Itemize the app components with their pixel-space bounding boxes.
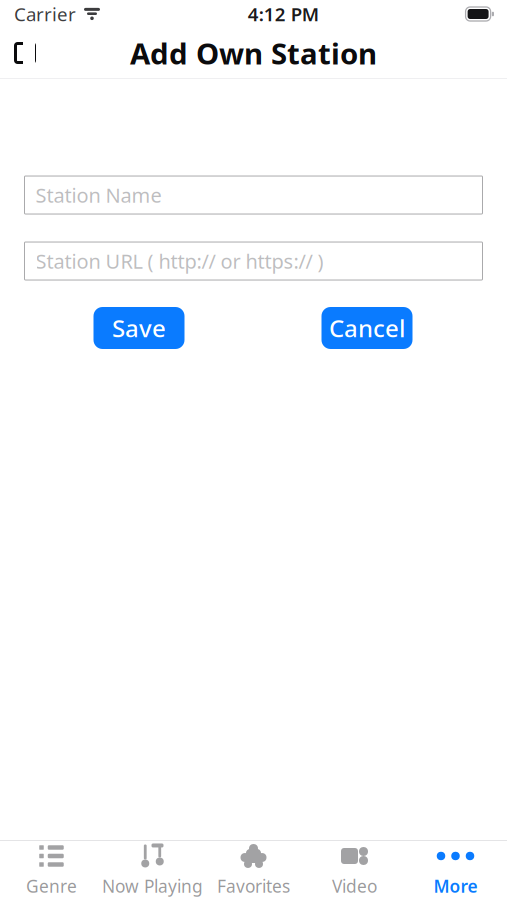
button[interactable]: Favorites xyxy=(203,841,304,900)
button[interactable]: Video xyxy=(304,841,405,900)
staticText: Station Name xyxy=(35,182,161,208)
staticText: More xyxy=(433,874,477,897)
staticText: Save xyxy=(112,312,166,344)
button[interactable]: Save xyxy=(93,307,184,349)
staticText: Now Playing xyxy=(102,874,203,897)
button[interactable]: Back xyxy=(0,29,50,77)
staticText: 4:12 PM xyxy=(248,2,319,26)
staticText: Cancel xyxy=(329,312,405,344)
button[interactable]: More xyxy=(405,841,506,900)
staticText: Video xyxy=(332,874,377,897)
staticText: Add Own Station xyxy=(130,33,377,72)
button[interactable]: Genre xyxy=(1,841,102,900)
staticText: Favorites xyxy=(217,874,290,897)
button[interactable]: Cancel xyxy=(321,307,412,349)
staticText: Carrier xyxy=(14,2,76,26)
staticText: Station URL ( http:// or https:// ) xyxy=(35,248,323,274)
button[interactable]: Now Playing xyxy=(102,841,203,900)
staticText: Genre xyxy=(26,874,77,897)
